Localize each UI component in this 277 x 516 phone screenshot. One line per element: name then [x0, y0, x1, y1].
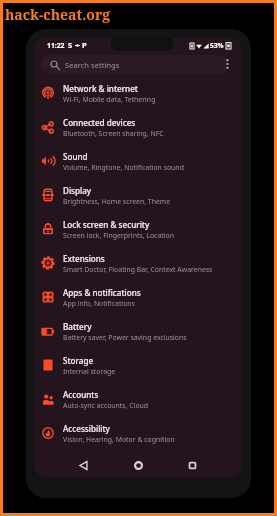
button[interactable]: Search settings — [41, 55, 228, 74]
staticText: P — [82, 40, 87, 50]
staticText: Display — [63, 185, 92, 196]
staticText: Smart Doctor, Floating Bar, Context Awar… — [63, 265, 213, 274]
staticText: Extensions — [63, 253, 105, 264]
staticText: Connected devices — [63, 117, 136, 128]
button[interactable]: Back — [73, 455, 93, 475]
staticText: 53% — [210, 41, 224, 50]
staticText: Volume, Ringtone, Notification sound — [63, 163, 184, 172]
staticText: Internal storage — [63, 367, 116, 376]
staticText: Storage — [63, 355, 94, 366]
button[interactable]: Storage — [34, 348, 242, 382]
staticText: S — [68, 40, 73, 50]
button[interactable]: Sound — [34, 144, 242, 178]
staticText: Battery saver, Power saving exclusions — [63, 333, 187, 342]
staticText: hack-cheat.org — [5, 5, 111, 24]
staticText: Accounts — [63, 389, 99, 400]
staticText: Wi-Fi, Mobile data, Tethering — [63, 95, 156, 104]
staticText: Network & internet — [63, 83, 138, 94]
staticText: Accessibility — [63, 423, 110, 434]
staticText: Bluetooth, Screen sharing, NFC — [63, 129, 164, 138]
button[interactable]: More options — [218, 55, 236, 73]
staticText: Lock screen & security — [63, 219, 150, 230]
staticText: Auto-sync accounts, Cloud — [63, 401, 149, 410]
button[interactable]: Extensions — [34, 246, 242, 280]
button[interactable]: Network & internet — [34, 76, 242, 110]
button[interactable]: Home — [128, 455, 148, 475]
staticText: Vision, Hearing, Motor & cognition — [63, 435, 175, 444]
button[interactable]: Accessibility — [34, 416, 242, 450]
button[interactable]: Battery — [34, 314, 242, 348]
button[interactable]: Display — [34, 178, 242, 212]
staticText: Sound — [63, 151, 88, 162]
button[interactable]: Accounts — [34, 382, 242, 416]
staticText: Screen lock, Fingerprints, Location — [63, 231, 174, 240]
staticText: App info, Notifications — [63, 299, 135, 308]
button[interactable]: Lock screen & security — [34, 212, 242, 246]
button[interactable]: Recents — [182, 455, 202, 475]
button[interactable]: Apps & notifications — [34, 280, 242, 314]
staticText: Apps & notifications — [63, 287, 141, 298]
staticText: Search settings — [65, 60, 120, 70]
staticText: 11:22 — [47, 41, 65, 50]
staticText: Battery — [63, 321, 92, 332]
button[interactable]: Connected devices — [34, 110, 242, 144]
staticText: Brightness, Home screen, Theme — [63, 197, 171, 206]
